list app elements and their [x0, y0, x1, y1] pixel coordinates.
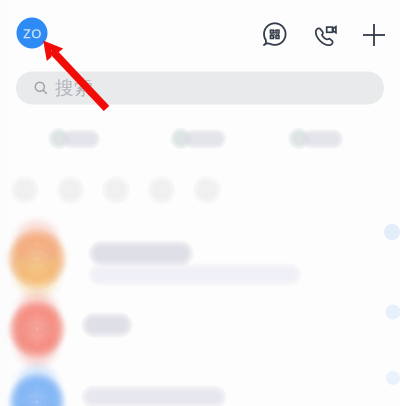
staticText: ZO — [23, 24, 41, 42]
button[interactable]: 搜索 — [16, 71, 384, 104]
button[interactable]: Scan — [261, 21, 287, 47]
button[interactable]: Add — [361, 22, 387, 48]
button[interactable]: Video call — [311, 22, 337, 48]
button[interactable]: Profile — [16, 17, 47, 48]
staticText: 搜索 — [55, 76, 93, 99]
